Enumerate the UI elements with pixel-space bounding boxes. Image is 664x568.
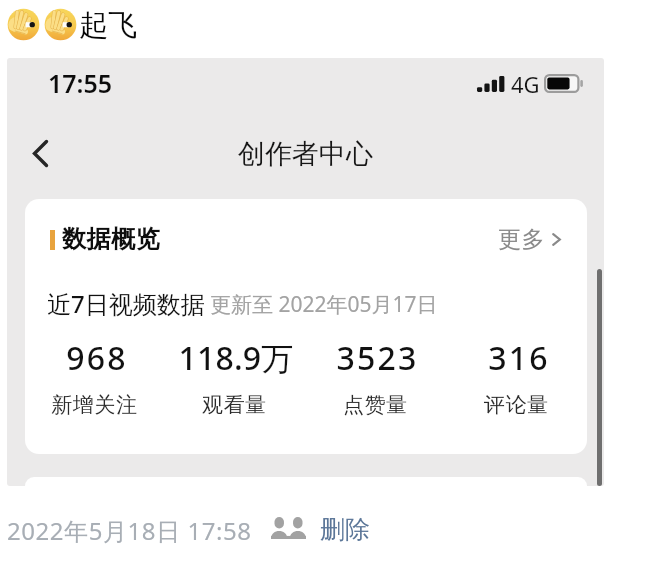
other: Facepalm emoji: [44, 8, 77, 41]
staticText: 968: [66, 336, 128, 380]
button[interactable]: 17:55: [7, 58, 604, 486]
staticText: 更多: [498, 225, 546, 254]
button[interactable]: 更多: [498, 225, 561, 254]
staticText: 17:55: [48, 66, 113, 100]
staticText: 2022年5月18日 17:58: [7, 514, 252, 547]
other: Group members: [271, 517, 306, 539]
staticText: 点赞量: [343, 392, 408, 418]
staticText: 近7日视频数据: [47, 287, 205, 320]
button[interactable]: 删除: [320, 514, 370, 545]
staticText: 起飞: [79, 7, 137, 44]
button[interactable]: Back: [18, 131, 62, 175]
staticText: 更新至 2022年05月17日: [210, 290, 438, 319]
staticText: 4G: [511, 69, 540, 99]
staticText: 118.9万: [178, 336, 294, 380]
staticText: 评论量: [484, 392, 549, 418]
staticText: 观看量: [202, 392, 267, 418]
button[interactable]: 数据概览: [25, 199, 587, 454]
staticText: 数据概览: [62, 224, 161, 254]
staticText: 创作者中心: [238, 137, 373, 171]
other: Facepalm emoji: [7, 8, 40, 41]
staticText: 新增关注: [51, 392, 138, 418]
staticText: 316: [488, 336, 550, 380]
staticText: 3523: [336, 336, 419, 380]
